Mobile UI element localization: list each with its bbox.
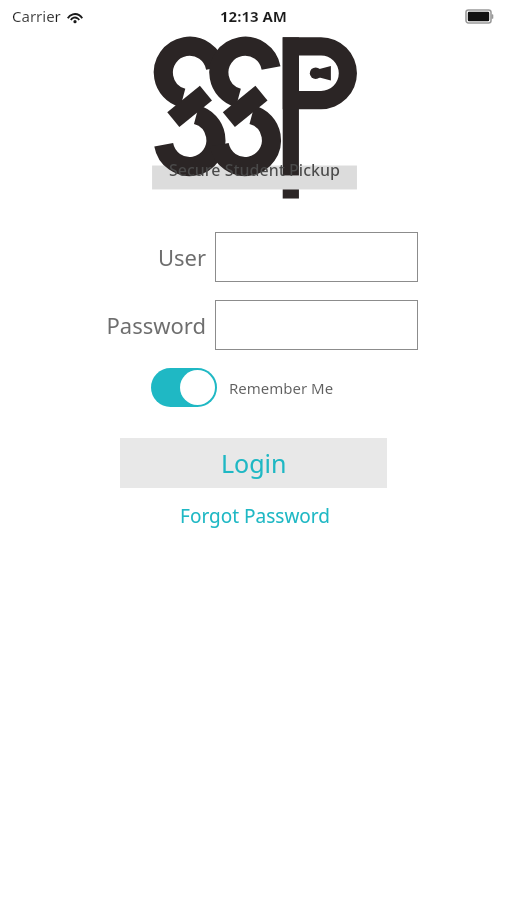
staticText: 12:13 AM (220, 6, 287, 26)
staticText: Forgot Password (180, 503, 330, 529)
staticText: Password (106, 310, 206, 340)
staticText: User (157, 242, 206, 272)
button[interactable]: User input field (215, 232, 418, 282)
staticText: Secure Student Pickup (169, 159, 340, 181)
button[interactable]: Forgot Password (174, 501, 336, 531)
button[interactable]: Password input field (215, 300, 418, 350)
staticText: Remember Me (229, 378, 334, 398)
staticText: Carrier (12, 6, 61, 26)
staticText: Login (221, 446, 287, 480)
button[interactable]: Remember Me toggle (151, 368, 217, 407)
button[interactable]: Login (120, 438, 387, 488)
